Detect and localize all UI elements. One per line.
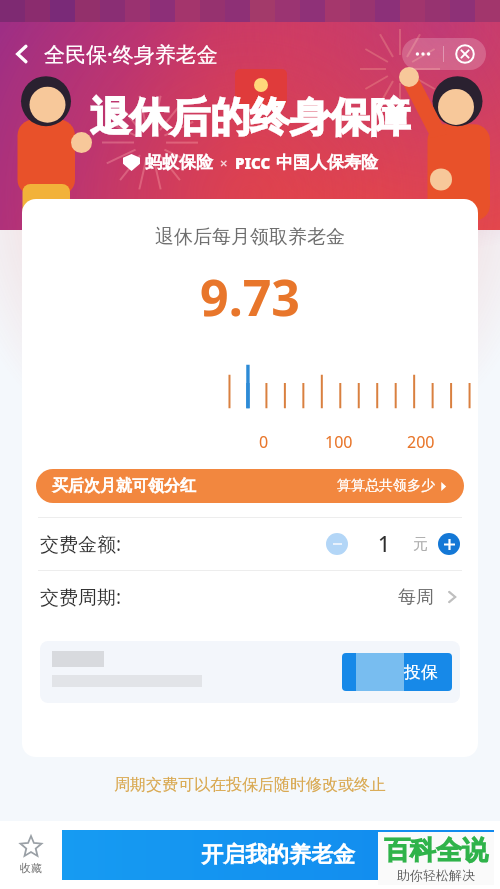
- staticText: 全民保·终身养老金: [44, 40, 218, 69]
- staticText: 每周: [398, 586, 434, 609]
- staticText: ×: [220, 154, 228, 172]
- button[interactable]: More options: [402, 38, 443, 70]
- staticText: 收藏: [20, 861, 42, 875]
- staticText: 蚂蚁保险: [145, 152, 213, 173]
- staticText: 投保: [404, 662, 438, 683]
- staticText: 9.73: [22, 263, 478, 331]
- staticText: 100: [325, 431, 353, 453]
- button[interactable]: 投保: [342, 653, 452, 691]
- button[interactable]: Close: [444, 38, 486, 70]
- staticText: 退休后每月领取养老金: [22, 225, 478, 249]
- button[interactable]: 开启我的养老金: [62, 830, 494, 880]
- staticText: 百科全说: [384, 834, 488, 867]
- staticText: 开启我的养老金: [201, 841, 355, 869]
- staticText: 200: [407, 431, 435, 453]
- button[interactable]: Increase: [438, 533, 460, 555]
- button[interactable]: 买后次月就可领分红: [36, 469, 464, 503]
- staticText: 周期交费可以在投保后随时修改或终止: [114, 775, 386, 795]
- staticText: 0: [259, 431, 269, 453]
- button[interactable]: Decrease: [326, 533, 348, 555]
- staticText: 元: [413, 535, 428, 554]
- button[interactable]: Back: [0, 32, 44, 76]
- staticText: 退休后的终身保障: [90, 92, 410, 142]
- staticText: 交费金额:: [40, 531, 122, 557]
- button[interactable]: 投保: [40, 641, 460, 703]
- button[interactable]: 交费周期:: [22, 571, 478, 623]
- button[interactable]: 交费金额:: [22, 518, 478, 570]
- button[interactable]: 收藏: [0, 821, 62, 889]
- staticText: 助你轻松解决: [397, 867, 475, 883]
- staticText: 1: [378, 530, 391, 559]
- staticText: 算算总共领多少: [337, 477, 435, 495]
- staticText: PICC: [235, 153, 271, 173]
- staticText: 中国人保寿险: [276, 152, 378, 173]
- staticText: 买后次月就可领分红: [52, 476, 196, 496]
- staticText: 交费周期:: [40, 584, 122, 610]
